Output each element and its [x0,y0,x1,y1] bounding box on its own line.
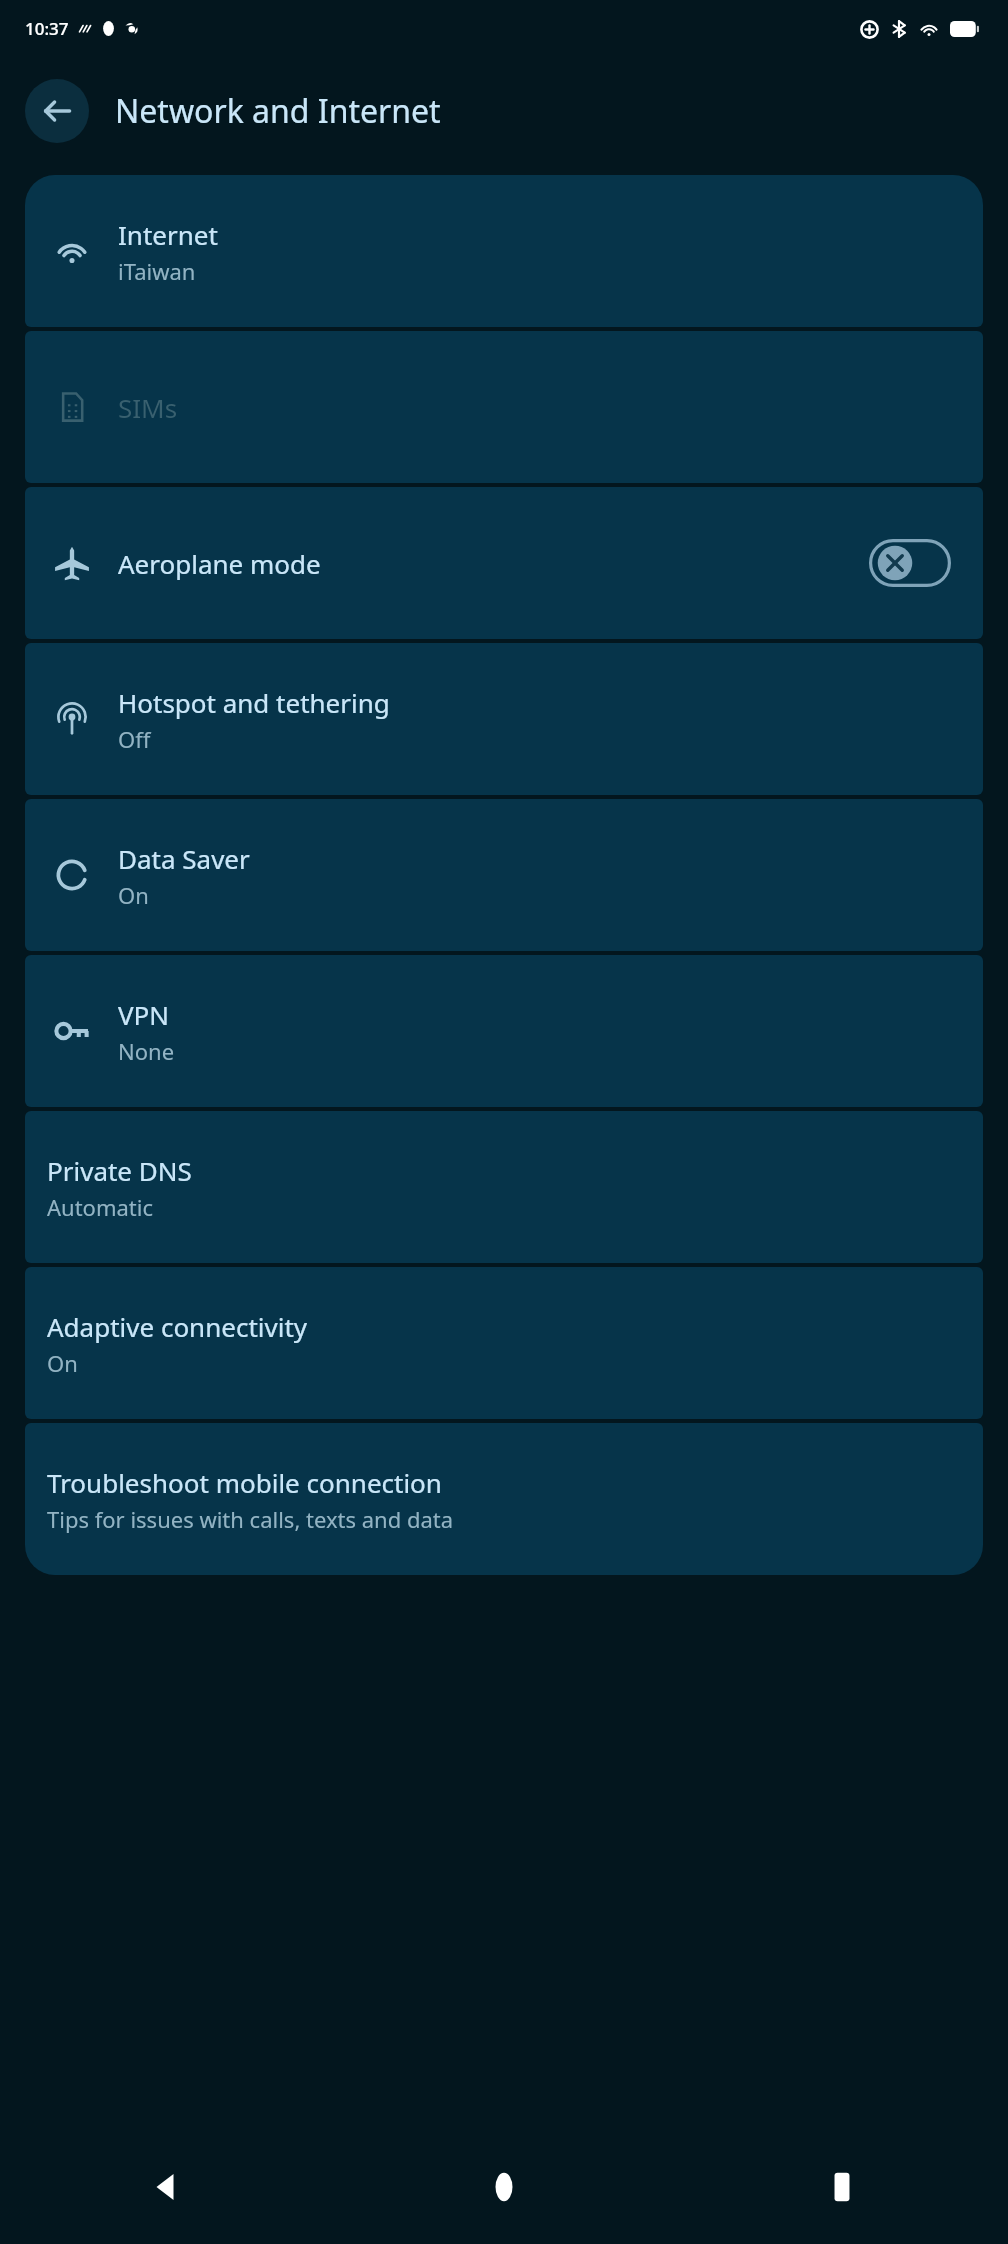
staticText: Off [118,724,151,754]
staticText: None [118,1036,175,1066]
staticText: Troubleshoot mobile connection [47,1465,442,1500]
staticText: Aeroplane mode [118,546,869,581]
button[interactable]: Aeroplane mode toggle [869,539,951,587]
button[interactable]: Hotspot and tethering [25,643,983,795]
button[interactable]: VPN [25,955,983,1107]
staticText: SIMs [118,390,178,425]
button[interactable]: Adaptive connectivity [25,1267,983,1419]
staticText: Tips for issues with calls, texts and da… [47,1504,454,1534]
staticText: Data Saver [118,841,250,876]
button[interactable]: Aeroplane mode [25,487,983,639]
staticText: On [118,880,149,910]
button[interactable]: Recents [806,2151,878,2223]
staticText: On [47,1348,78,1378]
staticText: Private DNS [47,1153,192,1188]
staticText: Hotspot and tethering [118,685,390,720]
staticText: Adaptive connectivity [47,1309,308,1344]
button[interactable]: Back [130,2151,202,2223]
button[interactable]: Back [25,79,89,143]
staticText: Internet [118,217,218,252]
button[interactable]: Home [468,2151,540,2223]
staticText: Network and Internet [115,89,441,133]
button[interactable]: Troubleshoot mobile connection [25,1423,983,1575]
staticText: 10:37 [25,17,69,40]
staticText: VPN [118,997,170,1032]
button[interactable]: Internet [25,175,983,327]
button[interactable]: Data Saver [25,799,983,951]
button[interactable]: Private DNS [25,1111,983,1263]
staticText: iTaiwan [118,256,196,286]
staticText: Automatic [47,1192,153,1222]
